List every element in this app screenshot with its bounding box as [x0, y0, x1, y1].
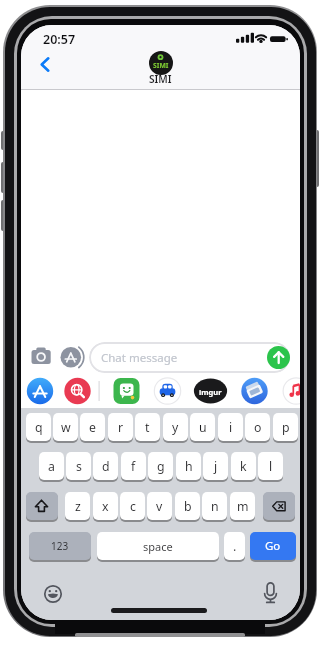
- button[interactable]: e: [80, 413, 105, 441]
- button[interactable]: z: [65, 492, 90, 520]
- button[interactable]: n: [202, 492, 227, 520]
- staticText: p: [282, 419, 290, 436]
- button[interactable]: l: [258, 452, 283, 480]
- staticText: j: [214, 458, 218, 475]
- button[interactable]: [26, 492, 58, 520]
- button[interactable]: r: [108, 413, 133, 441]
- staticText: 20:57: [43, 31, 76, 45]
- staticText: z: [75, 498, 81, 515]
- staticText: imgur: [199, 387, 222, 397]
- staticText: a: [48, 458, 55, 475]
- staticText: v: [156, 498, 163, 515]
- staticText: e: [89, 419, 96, 436]
- button[interactable]: t: [135, 413, 160, 441]
- button[interactable]: [149, 51, 173, 75]
- button[interactable]: [59, 346, 86, 369]
- button[interactable]: c: [120, 492, 145, 520]
- button[interactable]: y: [163, 413, 188, 441]
- staticText: q: [35, 419, 43, 436]
- button[interactable]: v: [147, 492, 172, 520]
- button[interactable]: u: [190, 413, 215, 441]
- staticText: k: [240, 458, 247, 475]
- button[interactable]: j: [203, 452, 228, 480]
- staticText: u: [199, 419, 207, 436]
- button[interactable]: [262, 581, 279, 604]
- staticText: m: [237, 498, 249, 515]
- staticText: space: [143, 539, 173, 554]
- staticText: x: [102, 498, 109, 515]
- button[interactable]: [242, 378, 268, 404]
- staticText: d: [102, 458, 110, 475]
- staticText: f: [131, 458, 136, 475]
- button[interactable]: s: [66, 452, 91, 480]
- staticText: SIMI: [153, 61, 169, 70]
- staticText: y: [172, 419, 179, 436]
- button[interactable]: [89, 342, 290, 373]
- button[interactable]: g: [148, 452, 173, 480]
- staticText: Chat message: [101, 350, 178, 366]
- staticText: h: [185, 458, 193, 475]
- staticText: c: [130, 498, 136, 515]
- button[interactable]: [263, 492, 295, 520]
- staticText: i: [229, 419, 233, 436]
- button[interactable]: [45, 585, 63, 603]
- button[interactable]: [283, 378, 300, 404]
- button[interactable]: q: [26, 413, 51, 441]
- button[interactable]: .: [224, 532, 245, 560]
- button[interactable]: [35, 53, 57, 75]
- staticText: n: [211, 498, 219, 515]
- button[interactable]: a: [39, 452, 64, 480]
- button[interactable]: [194, 379, 227, 404]
- staticText: b: [184, 498, 192, 515]
- button[interactable]: d: [93, 452, 118, 480]
- button[interactable]: k: [231, 452, 256, 480]
- staticText: .: [233, 538, 237, 555]
- button[interactable]: 123: [29, 532, 91, 560]
- staticText: l: [269, 458, 273, 475]
- button[interactable]: [27, 378, 53, 404]
- staticText: t: [145, 419, 150, 436]
- button[interactable]: p: [273, 413, 298, 441]
- button[interactable]: [267, 346, 290, 369]
- staticText: SIMI: [149, 72, 172, 84]
- staticText: g: [157, 458, 165, 475]
- button[interactable]: [155, 378, 181, 404]
- staticText: Go: [265, 538, 281, 554]
- button[interactable]: m: [230, 492, 255, 520]
- button[interactable]: o: [245, 413, 270, 441]
- staticText: o: [254, 419, 262, 436]
- button[interactable]: i: [218, 413, 243, 441]
- button[interactable]: h: [176, 452, 201, 480]
- staticText: w: [61, 419, 71, 436]
- button[interactable]: [29, 345, 54, 366]
- staticText: r: [118, 419, 124, 436]
- staticText: 123: [51, 539, 69, 553]
- button[interactable]: x: [93, 492, 118, 520]
- button[interactable]: b: [175, 492, 200, 520]
- button[interactable]: space: [97, 532, 219, 560]
- staticText: s: [76, 458, 82, 475]
- button[interactable]: w: [53, 413, 78, 441]
- button[interactable]: f: [121, 452, 146, 480]
- button[interactable]: [114, 378, 140, 404]
- button[interactable]: Go: [250, 532, 296, 560]
- button[interactable]: [65, 378, 91, 404]
